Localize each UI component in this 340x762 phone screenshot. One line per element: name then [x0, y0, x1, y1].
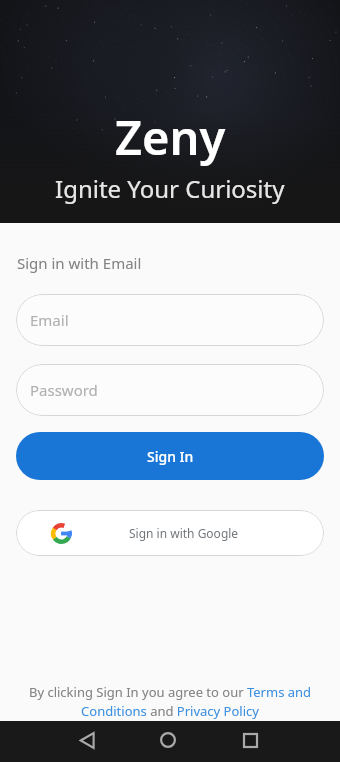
button[interactable]: Home [148, 720, 188, 760]
button[interactable]: Password [16, 364, 324, 416]
button[interactable]: Sign In [16, 432, 324, 480]
staticText: Sign in with Google [129, 525, 239, 541]
staticText: Email [30, 310, 69, 330]
staticText: Password [30, 380, 98, 400]
button[interactable]: Email [16, 294, 324, 346]
button[interactable]: Back [67, 720, 107, 760]
button[interactable]: Recent apps [230, 720, 270, 760]
staticText: Zeny [115, 105, 226, 169]
staticText: Sign in with Email [17, 253, 142, 273]
staticText: Ignite Your Curiosity [55, 172, 285, 205]
button[interactable]: Sign in with Google [16, 510, 324, 556]
staticText: By clicking Sign In you agree to our Ter… [22, 683, 318, 720]
button[interactable]: By clicking Sign In you agree to our Ter… [22, 683, 318, 720]
staticText: Sign In [147, 447, 194, 466]
